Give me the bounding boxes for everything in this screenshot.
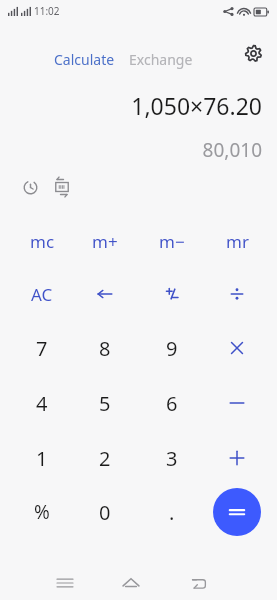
- staticText: 3: [166, 445, 178, 472]
- staticText: Calculate: [54, 50, 115, 69]
- button[interactable]: mc: [16, 217, 68, 265]
- staticText: mr: [226, 230, 249, 253]
- button[interactable]: 3: [146, 434, 198, 482]
- button[interactable]: Add: [211, 434, 263, 482]
- button[interactable]: 0: [79, 488, 131, 536]
- button[interactable]: 4: [16, 379, 68, 427]
- staticText: 2: [99, 445, 111, 472]
- button[interactable]: Multiply: [211, 324, 263, 372]
- staticText: Exchange: [129, 50, 193, 69]
- button[interactable]: 2: [79, 434, 131, 482]
- button[interactable]: AC: [16, 270, 68, 318]
- button[interactable]: m+: [79, 217, 131, 265]
- staticText: 5: [99, 390, 111, 417]
- button[interactable]: 8: [79, 324, 131, 372]
- staticText: .: [169, 499, 175, 526]
- button[interactable]: Divide: [211, 270, 263, 318]
- staticText: 6: [166, 390, 178, 417]
- button[interactable]: Calculate: [52, 48, 117, 71]
- button[interactable]: 1: [16, 434, 68, 482]
- button[interactable]: 6: [146, 379, 198, 427]
- button[interactable]: Toggle sign: [146, 270, 198, 318]
- staticText: 80,010: [0, 137, 262, 163]
- button[interactable]: Back: [181, 566, 215, 600]
- staticText: AC: [31, 283, 53, 306]
- button[interactable]: .: [146, 488, 198, 536]
- button[interactable]: mr: [211, 217, 263, 265]
- button[interactable]: m−: [146, 217, 198, 265]
- button[interactable]: History: [17, 174, 43, 200]
- staticText: 7: [36, 335, 48, 362]
- button[interactable]: Equals: [213, 488, 261, 536]
- button[interactable]: Subtract: [211, 379, 263, 427]
- staticText: 0: [99, 499, 111, 526]
- button[interactable]: Backspace: [79, 270, 131, 318]
- button[interactable]: Home: [114, 566, 148, 600]
- staticText: 1,050×76.20: [0, 90, 262, 121]
- button[interactable]: %: [16, 488, 68, 536]
- button[interactable]: 9: [146, 324, 198, 372]
- button[interactable]: Mode: [49, 174, 75, 200]
- staticText: 9: [166, 335, 178, 362]
- staticText: mc: [30, 230, 55, 253]
- button[interactable]: Exchange: [127, 48, 195, 71]
- staticText: m+: [92, 230, 118, 253]
- staticText: 8: [99, 335, 111, 362]
- button[interactable]: Recent apps: [48, 566, 82, 600]
- button[interactable]: 7: [16, 324, 68, 372]
- staticText: %: [34, 499, 50, 525]
- staticText: m−: [159, 230, 185, 253]
- staticText: 1: [36, 445, 48, 472]
- button[interactable]: Settings: [237, 37, 269, 69]
- staticText: 11:02: [34, 4, 60, 18]
- staticText: 4: [36, 390, 48, 417]
- button[interactable]: 5: [79, 379, 131, 427]
